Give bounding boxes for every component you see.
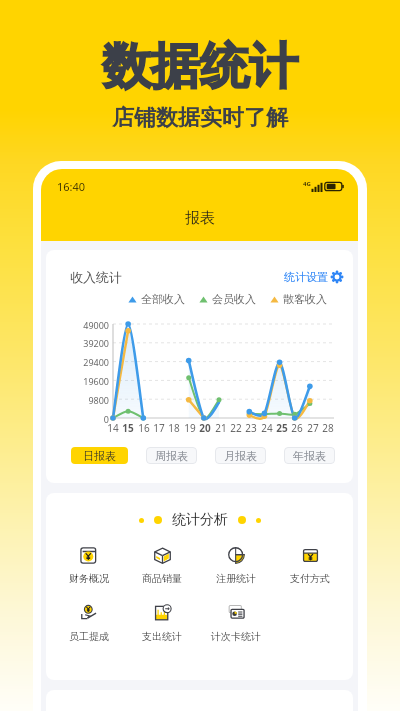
staticText: 数据统计 <box>102 36 298 98</box>
staticText: 14 <box>101 421 125 435</box>
staticText: 16:40 <box>57 179 86 194</box>
staticText: 年报表 <box>293 449 326 463</box>
button[interactable]: 商品销量 <box>125 545 199 585</box>
staticText: 财务概况 <box>69 572 109 585</box>
staticText: 4G <box>303 180 311 188</box>
staticText: 26 <box>285 421 309 435</box>
staticText: 员工提成 <box>69 630 109 643</box>
staticText: 月报表 <box>224 449 257 463</box>
button[interactable]: 财务概况 <box>52 545 125 585</box>
button[interactable]: 日报表 <box>71 447 128 464</box>
staticText: 9800 <box>46 394 109 406</box>
staticText: 49000 <box>46 319 109 331</box>
button[interactable]: 计次卡统计 <box>199 603 273 643</box>
staticText: 27 <box>301 421 325 435</box>
staticText: 19600 <box>46 375 109 387</box>
staticText: 收入统计 <box>70 269 122 285</box>
staticText: 商品销量 <box>142 572 182 585</box>
button[interactable]: 月报表 <box>215 447 266 464</box>
staticText: 周报表 <box>155 449 188 463</box>
staticText: 店铺数据实时了解 <box>112 104 288 132</box>
staticText: 日报表 <box>83 449 116 463</box>
staticText: 统计设置 <box>284 270 328 284</box>
button[interactable]: 周报表 <box>146 447 197 464</box>
staticText: 16 <box>132 421 156 435</box>
staticText: 28 <box>316 421 340 435</box>
staticText: 统计分析 <box>172 511 228 529</box>
staticText: 17 <box>147 421 171 435</box>
staticText: 22 <box>224 421 248 435</box>
staticText: 支付方式 <box>290 572 330 585</box>
staticText: 支出统计 <box>142 630 182 643</box>
staticText: 报表 <box>185 209 215 228</box>
staticText: 会员收入 <box>212 292 256 306</box>
button[interactable]: 支付方式 <box>273 545 347 585</box>
staticText: 注册统计 <box>216 572 256 585</box>
staticText: 24 <box>255 421 279 435</box>
button[interactable]: 统计设置 <box>284 270 343 284</box>
staticText: 19 <box>178 421 202 435</box>
button[interactable]: 年报表 <box>284 447 335 464</box>
staticText: 21 <box>209 421 233 435</box>
staticText: 0 <box>46 413 109 425</box>
staticText: 计次卡统计 <box>211 630 261 643</box>
staticText: 39200 <box>46 337 109 349</box>
button[interactable]: 注册统计 <box>199 545 273 585</box>
button[interactable]: 支出统计 <box>125 603 199 643</box>
staticText: 23 <box>239 421 263 435</box>
staticText: 29400 <box>46 356 109 368</box>
button[interactable]: 员工提成 <box>52 603 125 643</box>
staticText: 18 <box>162 421 186 435</box>
staticText: 25 <box>270 421 294 435</box>
staticText: 散客收入 <box>283 292 327 306</box>
staticText: 20 <box>193 421 217 435</box>
staticText: 15 <box>116 421 140 435</box>
staticText: 全部收入 <box>141 292 185 306</box>
